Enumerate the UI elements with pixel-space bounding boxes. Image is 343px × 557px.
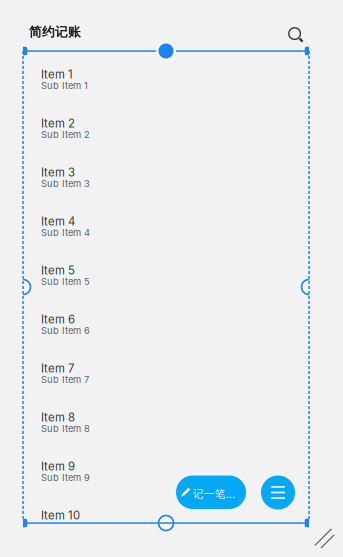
staticText: Item 4 (41, 215, 75, 228)
button[interactable]: Item 4 (41, 211, 289, 260)
button[interactable]: Item 2 (41, 113, 289, 162)
staticText: Sub Item 10 (41, 521, 94, 532)
staticText: Item 2 (41, 117, 75, 130)
button[interactable]: Item 8 (41, 407, 289, 456)
button[interactable]: Item 7 (41, 358, 289, 407)
staticText: Sub Item 6 (41, 325, 90, 336)
staticText: Sub Item 3 (41, 178, 90, 189)
button[interactable]: Item 5 (41, 260, 289, 309)
button[interactable]: Item 10 (41, 505, 289, 554)
button[interactable]: Search (283, 22, 309, 48)
staticText: Item 10 (41, 509, 80, 522)
button[interactable]: Item 6 (41, 309, 289, 358)
staticText: Sub Item 1 (41, 80, 88, 91)
staticText: Item 1 (41, 68, 73, 81)
staticText: 记一笔... (193, 487, 235, 501)
staticText: Sub Item 4 (41, 227, 90, 238)
staticText: Sub Item 7 (41, 374, 89, 385)
staticText: Sub Item 9 (41, 472, 90, 483)
staticText: Item 9 (41, 460, 75, 473)
staticText: Item 7 (41, 362, 74, 375)
staticText: Item 3 (41, 166, 75, 179)
button[interactable]: Item 9 (41, 456, 289, 505)
staticText: Item 8 (41, 411, 75, 424)
staticText: Sub Item 8 (41, 423, 90, 434)
button[interactable]: 记一笔... (176, 475, 246, 509)
button[interactable]: Item 1 (41, 64, 289, 113)
button[interactable]: Item 3 (41, 162, 289, 211)
staticText: Sub Item 5 (41, 276, 90, 287)
button[interactable]: Menu (261, 475, 295, 509)
staticText: 简约记账 (29, 24, 81, 40)
staticText: Item 5 (41, 264, 75, 277)
staticText: Item 6 (41, 313, 75, 326)
staticText: Sub Item 2 (41, 129, 90, 140)
